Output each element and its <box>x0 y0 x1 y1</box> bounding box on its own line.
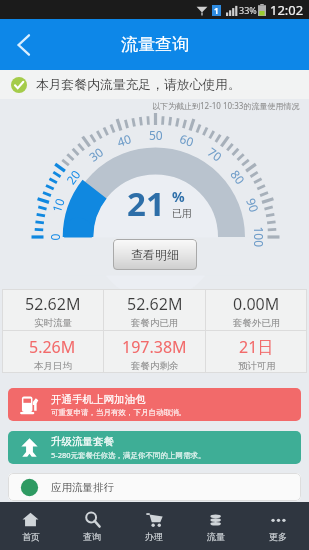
staticText: 以下为截止到12-10 10:33的流量使用情况 <box>152 100 300 111</box>
staticText: 查看明细 <box>131 247 179 262</box>
staticText: 10 <box>48 196 68 214</box>
staticText: 预计可用 <box>238 360 276 372</box>
staticText: 40 <box>115 130 133 150</box>
button[interactable]: 查看明细 <box>113 239 197 270</box>
staticText: 1 <box>214 5 219 16</box>
staticText: 20 <box>62 167 84 187</box>
staticText: 应用流量排行 <box>51 481 114 494</box>
staticText: 套餐外已用 <box>233 317 281 329</box>
staticText: 30 <box>86 143 106 165</box>
staticText: 70 <box>205 143 225 165</box>
button[interactable]: 升级流量套餐 <box>8 431 301 464</box>
staticText: 21日 <box>239 336 274 358</box>
button[interactable]: 查询 <box>61 502 123 550</box>
button[interactable]: 197.38M <box>104 331 205 373</box>
button[interactable]: 办理 <box>123 502 185 550</box>
staticText: 套餐内已用 <box>131 317 179 329</box>
staticText: 已用 <box>172 207 192 220</box>
staticText: 办理 <box>145 531 163 542</box>
staticText: 可重复申请，当月有效，下月自动取消。 <box>51 408 186 417</box>
staticText: 80 <box>227 167 249 187</box>
staticText: 90 <box>243 196 263 214</box>
button[interactable]: 5.26M <box>2 331 103 373</box>
staticText: 升级流量套餐 <box>51 435 114 448</box>
staticText: 流量 <box>207 531 225 542</box>
button[interactable]: 流量 <box>185 502 247 550</box>
button[interactable]: Back <box>0 22 46 68</box>
staticText: 实时流量 <box>34 317 72 329</box>
staticText: 本月套餐内流量充足，请放心使用。 <box>36 77 241 93</box>
staticText: 套餐内剩余 <box>131 360 179 372</box>
staticText: 60 <box>178 130 196 150</box>
staticText: 21 <box>127 181 165 226</box>
button[interactable]: 应用流量排行 <box>8 473 301 501</box>
staticText: 5.26M <box>29 336 76 358</box>
button[interactable]: 开通手机上网加油包 <box>8 388 301 421</box>
staticText: 开通手机上网加油包 <box>51 393 146 406</box>
staticText: 33% <box>239 4 257 16</box>
staticText: 50 <box>149 127 163 143</box>
staticText: 查询 <box>83 531 101 542</box>
staticText: 0 <box>46 233 62 240</box>
staticText: 52.62M <box>127 293 183 315</box>
staticText: 197.38M <box>122 336 187 358</box>
button[interactable]: 52.62M <box>104 289 205 330</box>
staticText: 12:02 <box>270 1 304 19</box>
button[interactable]: 21日 <box>206 331 307 373</box>
staticText: % <box>172 187 185 206</box>
staticText: 52.62M <box>25 293 81 315</box>
staticText: 更多 <box>269 531 287 542</box>
staticText: 流量查询 <box>121 34 189 55</box>
staticText: 首页 <box>22 531 40 542</box>
staticText: 100 <box>250 226 266 247</box>
button[interactable]: 0.00M <box>206 289 307 330</box>
button[interactable]: 52.62M <box>2 289 103 330</box>
staticText: 本月日均 <box>34 360 72 372</box>
button[interactable]: 首页 <box>0 502 61 550</box>
button[interactable]: 更多 <box>247 502 309 550</box>
staticText: 5-280元套餐任你选，满足你不同的上网需求。 <box>51 450 206 460</box>
staticText: 0.00M <box>233 293 280 315</box>
